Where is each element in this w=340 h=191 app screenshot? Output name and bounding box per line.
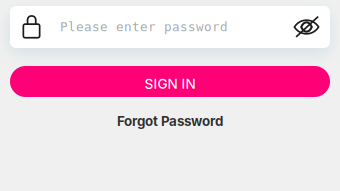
button[interactable]: Show password <box>294 15 319 39</box>
button[interactable]: SIGN IN <box>10 66 330 97</box>
button[interactable]: Forgot Password <box>117 113 223 129</box>
staticText: SIGN IN <box>144 75 195 92</box>
staticText: Forgot Password <box>117 113 223 129</box>
staticText: Please enter password <box>60 20 228 34</box>
